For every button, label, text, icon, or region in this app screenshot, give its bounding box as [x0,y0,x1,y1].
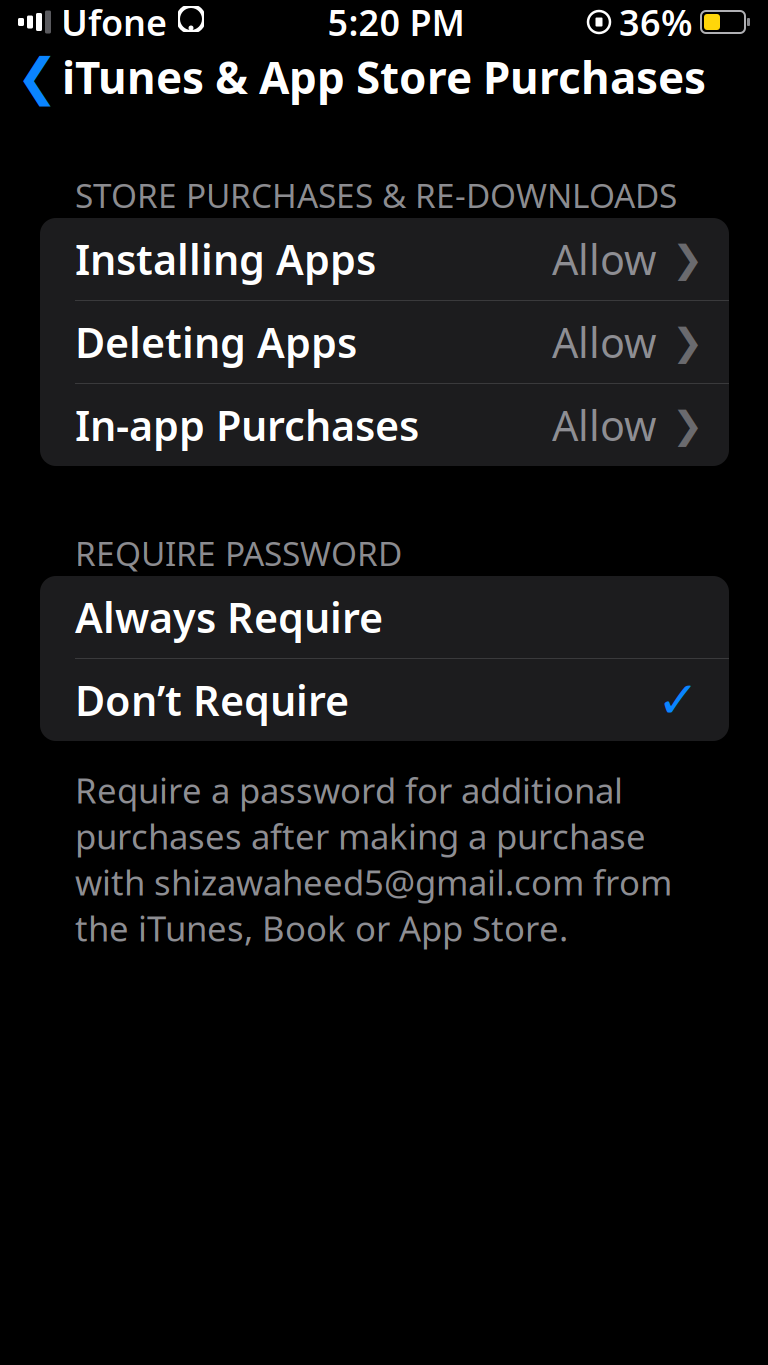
staticText: iTunes & App Store Purchases [62,48,706,106]
staticText: Don’t Require [75,673,349,727]
staticText: 36% [619,0,693,46]
staticText: In-app Purchases [75,398,419,452]
staticText: ✓ [657,671,699,729]
button[interactable]: Don’t Require [40,659,729,741]
button[interactable]: Installing Apps [40,218,729,300]
staticText: Allow [552,232,656,286]
staticText: ❯ [672,404,703,446]
staticText: ❮ [16,48,58,106]
button[interactable]: Back [8,48,66,106]
button[interactable]: Deleting Apps [40,301,729,383]
staticText: Require a password for additional purcha… [75,767,672,951]
staticText: Installing Apps [75,232,376,286]
button[interactable]: In-app Purchases [40,384,729,466]
staticText: Deleting Apps [75,315,357,369]
staticText: 5:20 PM [327,0,464,46]
staticText: ❯ [672,238,703,280]
staticText: STORE PURCHASES & RE-DOWNLOADS [75,173,677,217]
staticText: ❯ [672,321,703,363]
button[interactable]: Always Require [40,576,729,658]
staticText: Allow [552,398,656,452]
staticText: Ufone [61,0,167,46]
staticText: Always Require [75,590,383,644]
staticText: REQUIRE PASSWORD [75,531,402,575]
staticText: Allow [552,315,656,369]
